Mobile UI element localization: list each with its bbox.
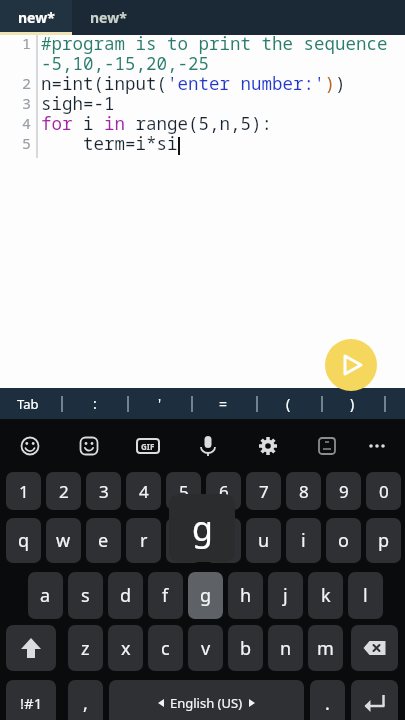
staticText: ) — [350, 394, 355, 413]
button[interactable]: t — [166, 518, 201, 563]
staticText: #program is to print the sequence — [41, 31, 388, 55]
button[interactable]: s — [68, 572, 103, 619]
staticText: i — [301, 528, 306, 553]
staticText: 0 — [379, 480, 389, 503]
button[interactable]: o — [326, 518, 361, 563]
staticText: GIF — [141, 441, 155, 452]
button[interactable]: g — [188, 572, 223, 619]
staticText: v — [201, 636, 211, 661]
button[interactable]: !#1 — [6, 680, 56, 720]
staticText: k — [321, 583, 331, 608]
staticText: new* — [90, 8, 127, 27]
button[interactable] — [351, 625, 398, 671]
staticText: English (US) — [170, 694, 243, 712]
staticText: -5,10,-15,20,-25 — [41, 51, 209, 75]
button[interactable]: 6 — [206, 472, 241, 510]
staticText: !#1 — [20, 693, 43, 713]
staticText: p — [378, 528, 390, 553]
button[interactable]: f — [148, 572, 183, 619]
staticText: 2 — [59, 480, 69, 503]
button[interactable]: d — [108, 572, 143, 619]
button[interactable]: c — [148, 625, 183, 671]
button[interactable]: new* — [72, 0, 144, 35]
button[interactable]: v — [188, 625, 223, 671]
button[interactable]: a — [28, 572, 63, 619]
button[interactable]: q — [6, 518, 41, 563]
button[interactable]: ) — [338, 388, 366, 419]
button[interactable]: u — [246, 518, 281, 563]
staticText: g — [200, 583, 212, 608]
button[interactable]: i — [286, 518, 321, 563]
button[interactable]: n — [268, 625, 303, 671]
staticText: 4 — [139, 480, 149, 503]
staticText: 3 — [99, 480, 109, 503]
staticText: a — [40, 583, 51, 608]
staticText: 3 — [22, 93, 32, 113]
button[interactable]: : — [81, 388, 109, 419]
button[interactable]: ( — [274, 388, 302, 419]
button[interactable]: b — [228, 625, 263, 671]
staticText: 6 — [219, 480, 229, 503]
button[interactable]: z — [68, 625, 103, 671]
staticText: n — [280, 636, 292, 661]
staticText: r — [140, 528, 148, 553]
staticText: ' — [158, 394, 162, 413]
button[interactable]: 5 — [166, 472, 201, 510]
button[interactable]: j — [268, 572, 303, 619]
staticText: . — [325, 691, 330, 716]
button[interactable]: 3 — [86, 472, 121, 510]
button[interactable]: x — [108, 625, 143, 671]
staticText: Tab — [17, 395, 39, 413]
staticText: , — [83, 691, 88, 716]
button[interactable]: GIF — [136, 438, 160, 454]
staticText: 8 — [299, 480, 309, 503]
staticText: j — [283, 583, 288, 608]
button[interactable]: Tab — [6, 388, 50, 419]
button[interactable]: new* — [0, 0, 72, 35]
button[interactable]: = — [209, 388, 237, 419]
staticText: m — [317, 636, 334, 661]
button[interactable] — [351, 680, 398, 720]
staticText: 2 — [22, 73, 32, 93]
staticText: 1 — [19, 480, 29, 503]
staticText: z — [81, 636, 90, 661]
button[interactable] — [325, 339, 377, 391]
button[interactable]: 4 — [126, 472, 161, 510]
button[interactable]: w — [46, 518, 81, 563]
button[interactable]: l — [348, 572, 383, 619]
staticText: s — [81, 583, 90, 608]
button[interactable]: 1 — [6, 472, 41, 510]
button[interactable]: h — [228, 572, 263, 619]
staticText: sigh=-1 — [41, 91, 115, 115]
button[interactable] — [6, 625, 56, 671]
staticText: u — [258, 528, 270, 553]
staticText: d — [120, 583, 132, 608]
button[interactable]: , — [68, 680, 103, 720]
button[interactable]: y — [206, 518, 241, 563]
staticText: f — [162, 583, 169, 608]
staticText: 9 — [339, 480, 349, 503]
button[interactable]: m — [308, 625, 343, 671]
staticText: l — [363, 583, 368, 608]
button[interactable]: k — [308, 572, 343, 619]
button[interactable]: p — [366, 518, 401, 563]
button[interactable]: . — [310, 680, 345, 720]
button[interactable]: r — [126, 518, 161, 563]
staticText: w — [56, 528, 71, 553]
button[interactable]: 9 — [326, 472, 361, 510]
button[interactable]: 8 — [286, 472, 321, 510]
staticText: n=int(input('enter number:')) — [41, 71, 346, 95]
button[interactable]: ' — [146, 388, 174, 419]
staticText: q — [18, 528, 30, 553]
staticText: : — [93, 394, 97, 413]
staticText: ( — [286, 394, 291, 413]
button[interactable]: English (US) — [109, 680, 304, 720]
button[interactable]: 0 — [366, 472, 401, 510]
staticText: 5 — [22, 133, 32, 153]
staticText: 5 — [179, 480, 189, 503]
button[interactable]: e — [86, 518, 121, 563]
button[interactable]: 7 — [246, 472, 281, 510]
button[interactable]: 2 — [46, 472, 81, 510]
